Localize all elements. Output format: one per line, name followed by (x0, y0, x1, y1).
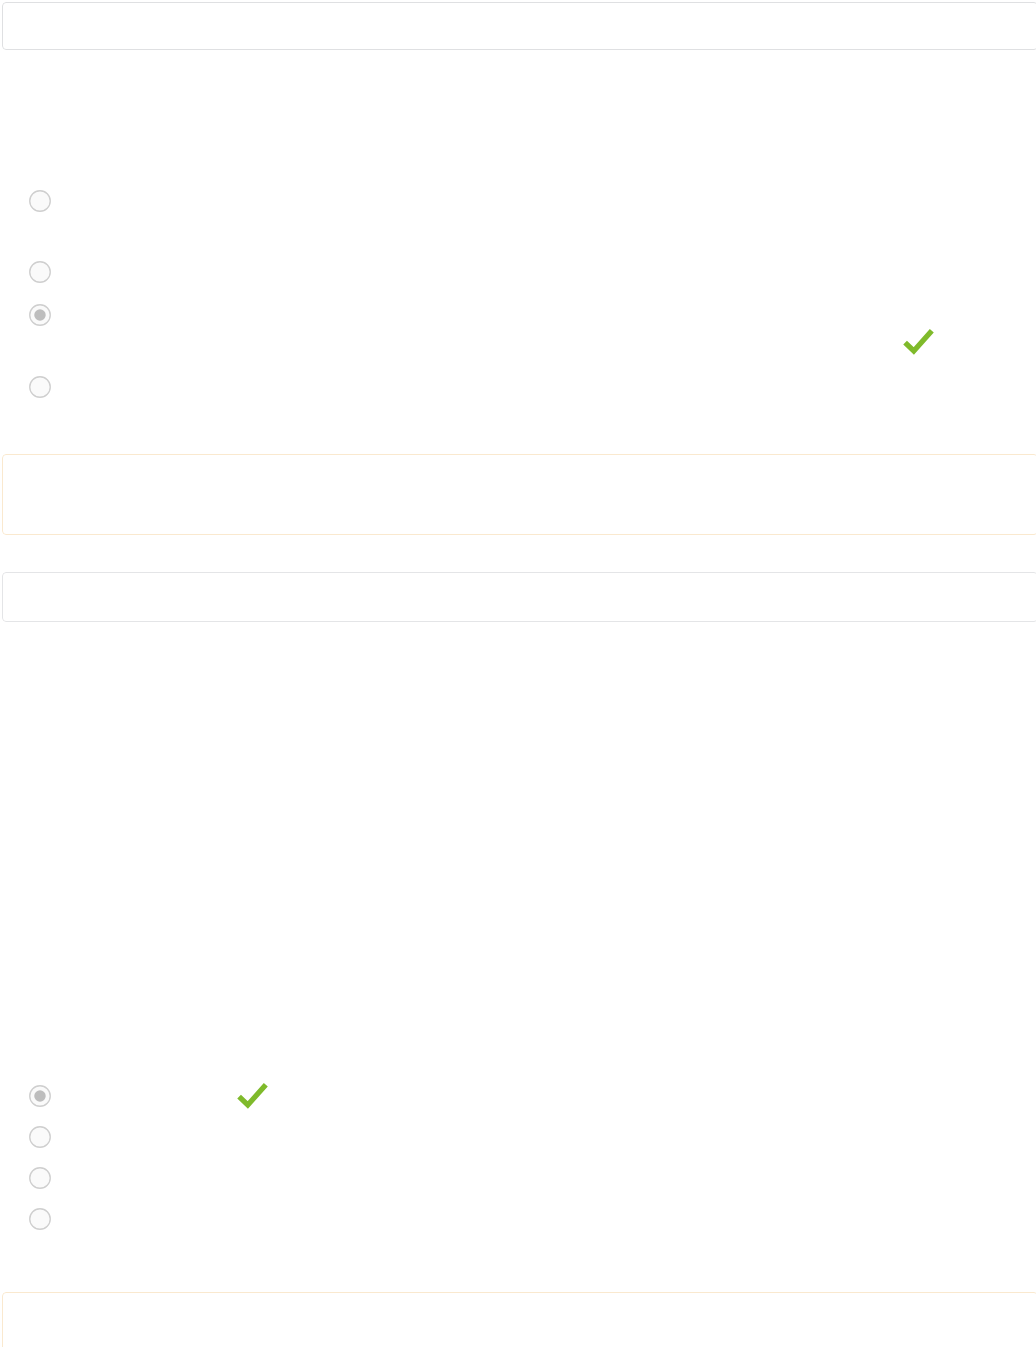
button[interactable]: Second question field (2, 572, 1036, 622)
button[interactable]: Option D (20, 1199, 60, 1239)
button[interactable]: Option C (20, 1158, 60, 1198)
button[interactable]: Option 1 (20, 181, 60, 221)
button[interactable]: Feedback note (2, 454, 1036, 535)
button[interactable]: Question field (2, 2, 1036, 50)
button[interactable]: Option 4 (20, 367, 60, 407)
button[interactable]: Bottom feedback note (2, 1292, 1036, 1347)
button[interactable]: Option A, selected (20, 1076, 60, 1116)
button[interactable]: Option B (20, 1117, 60, 1157)
button[interactable]: Option 2 (20, 252, 60, 292)
button[interactable]: Option 3, selected (20, 295, 60, 335)
